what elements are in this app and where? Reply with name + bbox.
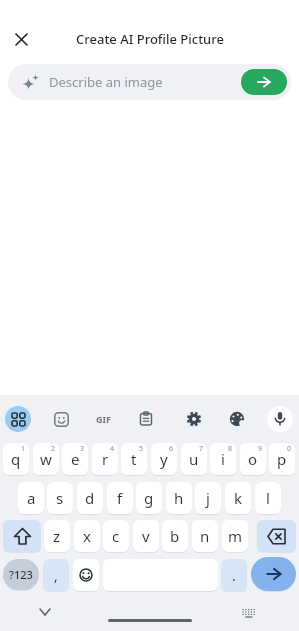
staticText: i	[221, 449, 225, 469]
staticText: 1	[21, 444, 26, 454]
staticText: q	[11, 449, 21, 469]
button[interactable]: e	[62, 443, 88, 475]
staticText: g	[144, 488, 154, 508]
button[interactable]	[257, 520, 296, 552]
staticText: n	[200, 526, 210, 546]
staticText: 5	[139, 444, 144, 454]
button[interactable]: p	[269, 443, 295, 475]
staticText: k	[234, 488, 243, 508]
staticText: y	[160, 449, 168, 469]
button[interactable]: m	[222, 520, 248, 552]
staticText: 7	[199, 444, 204, 454]
staticText: a	[27, 488, 36, 508]
button[interactable]: g	[136, 482, 162, 514]
staticText: u	[189, 449, 199, 469]
staticText: 4	[110, 444, 115, 454]
button[interactable]: w	[33, 443, 59, 475]
button[interactable]: t	[121, 443, 147, 475]
button[interactable]	[8, 26, 34, 52]
staticText: p	[277, 449, 287, 469]
staticText: d	[85, 488, 95, 508]
button[interactable]: k	[225, 482, 251, 514]
button[interactable]	[181, 406, 207, 432]
button[interactable]: .	[221, 559, 247, 591]
button[interactable]: r	[92, 443, 118, 475]
staticText: m	[228, 526, 243, 546]
staticText: Describe an image	[49, 73, 163, 91]
button[interactable]: a	[18, 482, 44, 514]
button[interactable]: j	[195, 482, 221, 514]
button[interactable]	[267, 406, 293, 432]
button[interactable]: c	[103, 520, 129, 552]
staticText: f	[117, 488, 123, 508]
staticText: b	[170, 526, 180, 546]
button[interactable]: v	[133, 520, 159, 552]
staticText: t	[131, 449, 137, 469]
staticText: ,	[54, 566, 58, 585]
button[interactable]	[241, 69, 287, 95]
staticText: c	[112, 526, 120, 546]
button[interactable]: s	[47, 482, 73, 514]
button[interactable]: d	[77, 482, 103, 514]
button[interactable]: ,	[43, 559, 69, 591]
button[interactable]: ?123	[3, 559, 39, 590]
staticText: ?123	[9, 567, 33, 582]
staticText: GIF	[96, 413, 111, 425]
button[interactable]	[73, 559, 99, 591]
button[interactable]: GIF	[90, 406, 116, 432]
button[interactable]: h	[166, 482, 192, 514]
staticText: j	[206, 488, 210, 508]
staticText: z	[53, 526, 61, 546]
staticText: 2	[51, 444, 56, 454]
button[interactable]	[224, 406, 250, 432]
staticText: h	[174, 488, 184, 508]
button[interactable]: f	[107, 482, 133, 514]
button[interactable]	[251, 557, 296, 591]
button[interactable]	[3, 520, 41, 552]
staticText: 6	[169, 444, 174, 454]
button[interactable]	[48, 406, 74, 432]
staticText: e	[71, 449, 80, 469]
staticText: x	[83, 526, 91, 546]
button[interactable]	[5, 406, 31, 432]
button[interactable]: x	[74, 520, 100, 552]
button[interactable]: o	[240, 443, 266, 475]
button[interactable]: u	[181, 443, 207, 475]
button[interactable]: y	[151, 443, 177, 475]
button[interactable]	[133, 406, 159, 432]
button[interactable]: i	[210, 443, 236, 475]
staticText: 9	[258, 444, 263, 454]
staticText: r	[102, 449, 109, 469]
staticText: o	[248, 449, 258, 469]
button[interactable]: l	[255, 482, 281, 514]
button[interactable]: n	[192, 520, 218, 552]
staticText: l	[266, 488, 270, 508]
button[interactable]: q	[3, 443, 29, 475]
button[interactable]: Describe an image	[8, 64, 291, 100]
button[interactable]: b	[162, 520, 188, 552]
staticText: 0	[287, 444, 292, 454]
staticText: s	[56, 488, 64, 508]
staticText: 8	[228, 444, 233, 454]
staticText: w	[40, 449, 52, 469]
staticText: 3	[80, 444, 85, 454]
button[interactable]: z	[44, 520, 70, 552]
staticText: .	[232, 566, 236, 585]
staticText: v	[142, 526, 150, 546]
staticText: Create AI Profile Picture	[76, 30, 224, 48]
